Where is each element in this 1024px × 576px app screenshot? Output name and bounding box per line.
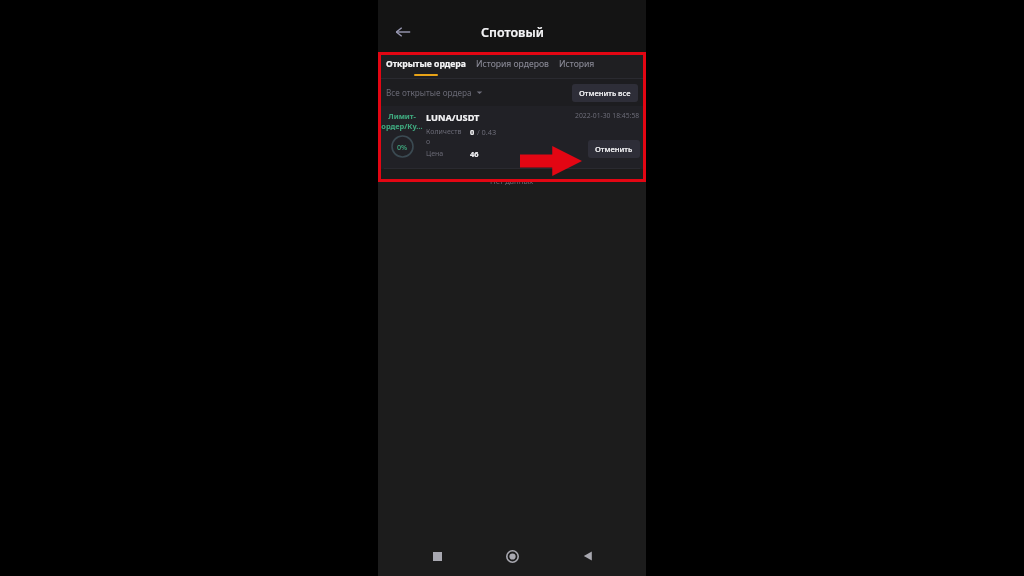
button[interactable]: Recent apps [420,539,454,573]
button[interactable]: Отменить все [572,84,638,102]
staticText: Цена [426,149,444,159]
staticText: LUNA/USDT [426,111,480,124]
staticText: История ордеров [476,58,549,70]
staticText: Все открытые ордера [386,87,472,98]
staticText: Отменить все [579,88,631,98]
staticText: 2022-01-30 18:45:58 [575,111,640,120]
button[interactable]: Все открытые ордера [386,87,483,98]
staticText: 0 [470,127,475,137]
button[interactable]: История ордеров [476,52,549,70]
staticText: Количеств [426,127,462,137]
staticText: 46 [470,149,479,159]
button[interactable]: Home [495,539,529,573]
staticText: Спотовый [481,24,544,41]
button[interactable]: История [559,52,595,70]
staticText: Открытые ордера [386,58,466,70]
staticText: / 0.43 [475,127,497,137]
staticText: Отменить [595,144,633,154]
button[interactable]: Back [386,15,420,49]
button[interactable]: Back [571,539,605,573]
button[interactable]: Открытые ордера [386,52,466,76]
staticText: о [426,137,431,147]
staticText: Нет данных [490,176,534,186]
staticText: 0% [397,142,408,152]
staticText: История [559,58,595,70]
staticText: ордер/Ку… [381,121,423,131]
button[interactable]: Отменить [588,140,640,158]
staticText: Лимит- [388,111,416,121]
